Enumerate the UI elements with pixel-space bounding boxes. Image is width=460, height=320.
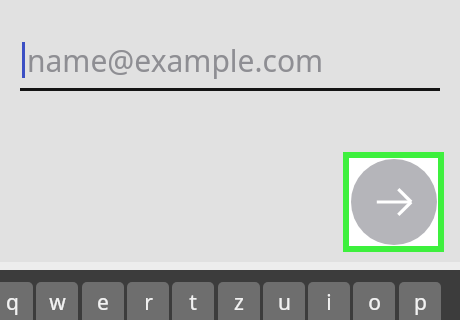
staticText: u	[278, 288, 291, 317]
staticText: r	[144, 288, 153, 317]
staticText: t	[189, 288, 197, 317]
staticText: z	[234, 288, 244, 317]
button[interactable]: o	[353, 282, 395, 320]
staticText: name@example.com	[27, 40, 324, 81]
button[interactable]: t	[172, 282, 214, 320]
button[interactable]: Next	[343, 152, 444, 252]
button[interactable]: name@example.com	[20, 34, 440, 92]
staticText: i	[326, 288, 332, 317]
button[interactable]: z	[218, 282, 260, 320]
button[interactable]: u	[263, 282, 305, 320]
button[interactable]: w	[36, 282, 78, 320]
staticText: q	[6, 288, 19, 317]
button[interactable]: p	[399, 282, 441, 320]
staticText: w	[49, 288, 66, 317]
button[interactable]: e	[82, 282, 124, 320]
button[interactable]: q	[0, 282, 33, 320]
staticText: e	[97, 288, 109, 317]
staticText: p	[414, 288, 427, 317]
button[interactable]: r	[127, 282, 169, 320]
staticText: o	[368, 288, 381, 317]
button[interactable]: i	[308, 282, 350, 320]
